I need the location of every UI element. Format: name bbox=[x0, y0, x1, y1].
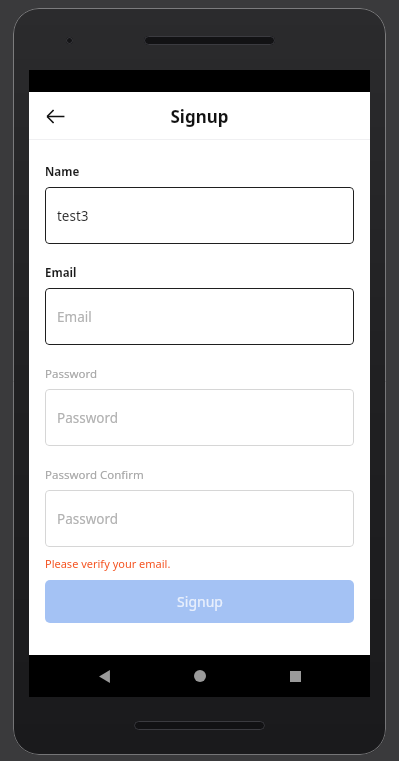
staticText: test3 bbox=[57, 207, 89, 225]
staticText: Name bbox=[45, 164, 80, 180]
button[interactable]: Home bbox=[179, 655, 221, 697]
staticText: Password bbox=[45, 366, 98, 382]
button[interactable]: Back bbox=[35, 96, 75, 136]
button[interactable]: Signup bbox=[45, 580, 354, 623]
button[interactable]: Password bbox=[45, 490, 354, 547]
staticText: Password bbox=[57, 510, 119, 528]
staticText: Password Confirm bbox=[45, 467, 144, 483]
staticText: Signup bbox=[170, 105, 229, 128]
staticText: Email bbox=[57, 308, 92, 326]
button[interactable]: Back bbox=[83, 655, 125, 697]
button[interactable]: Password bbox=[45, 389, 354, 446]
staticText: Please verify your email. bbox=[45, 556, 171, 571]
staticText: Password bbox=[57, 409, 119, 427]
button[interactable]: test3 bbox=[45, 187, 354, 244]
staticText: Signup bbox=[177, 592, 223, 611]
button[interactable]: Recent apps bbox=[274, 655, 316, 697]
staticText: Email bbox=[45, 265, 77, 281]
button[interactable]: Email bbox=[45, 288, 354, 345]
